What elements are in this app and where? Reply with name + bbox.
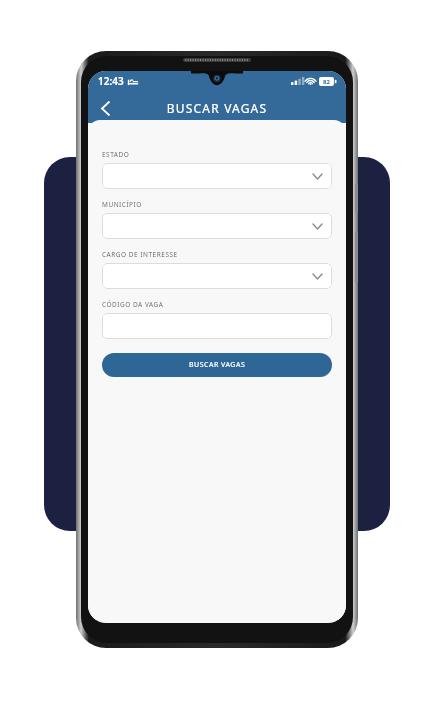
button[interactable]: BUSCAR VAGAS [102,353,332,377]
other: Abrir ESTADO [312,171,323,182]
button[interactable] [102,313,332,339]
staticText: BUSCAR VAGAS [105,100,329,116]
button[interactable]: Abrir ESTADO [102,163,332,189]
staticText: 12:43 [98,74,124,88]
staticText: 82 [323,78,330,86]
button[interactable]: Voltar [88,93,122,123]
button[interactable]: Abrir MUNICÍPIO [102,213,332,239]
staticText: BUSCAR VAGAS [189,360,246,370]
staticText: ESTADO [102,150,130,159]
staticText: CÓDIGO DA VAGA [102,300,164,309]
other: Abrir CARGO DE INTERESSE [312,271,323,282]
button[interactable]: Abrir CARGO DE INTERESSE [102,263,332,289]
staticText: MUNICÍPIO [102,200,142,209]
other: Abrir MUNICÍPIO [312,221,323,232]
staticText: CARGO DE INTERESSE [102,250,178,259]
